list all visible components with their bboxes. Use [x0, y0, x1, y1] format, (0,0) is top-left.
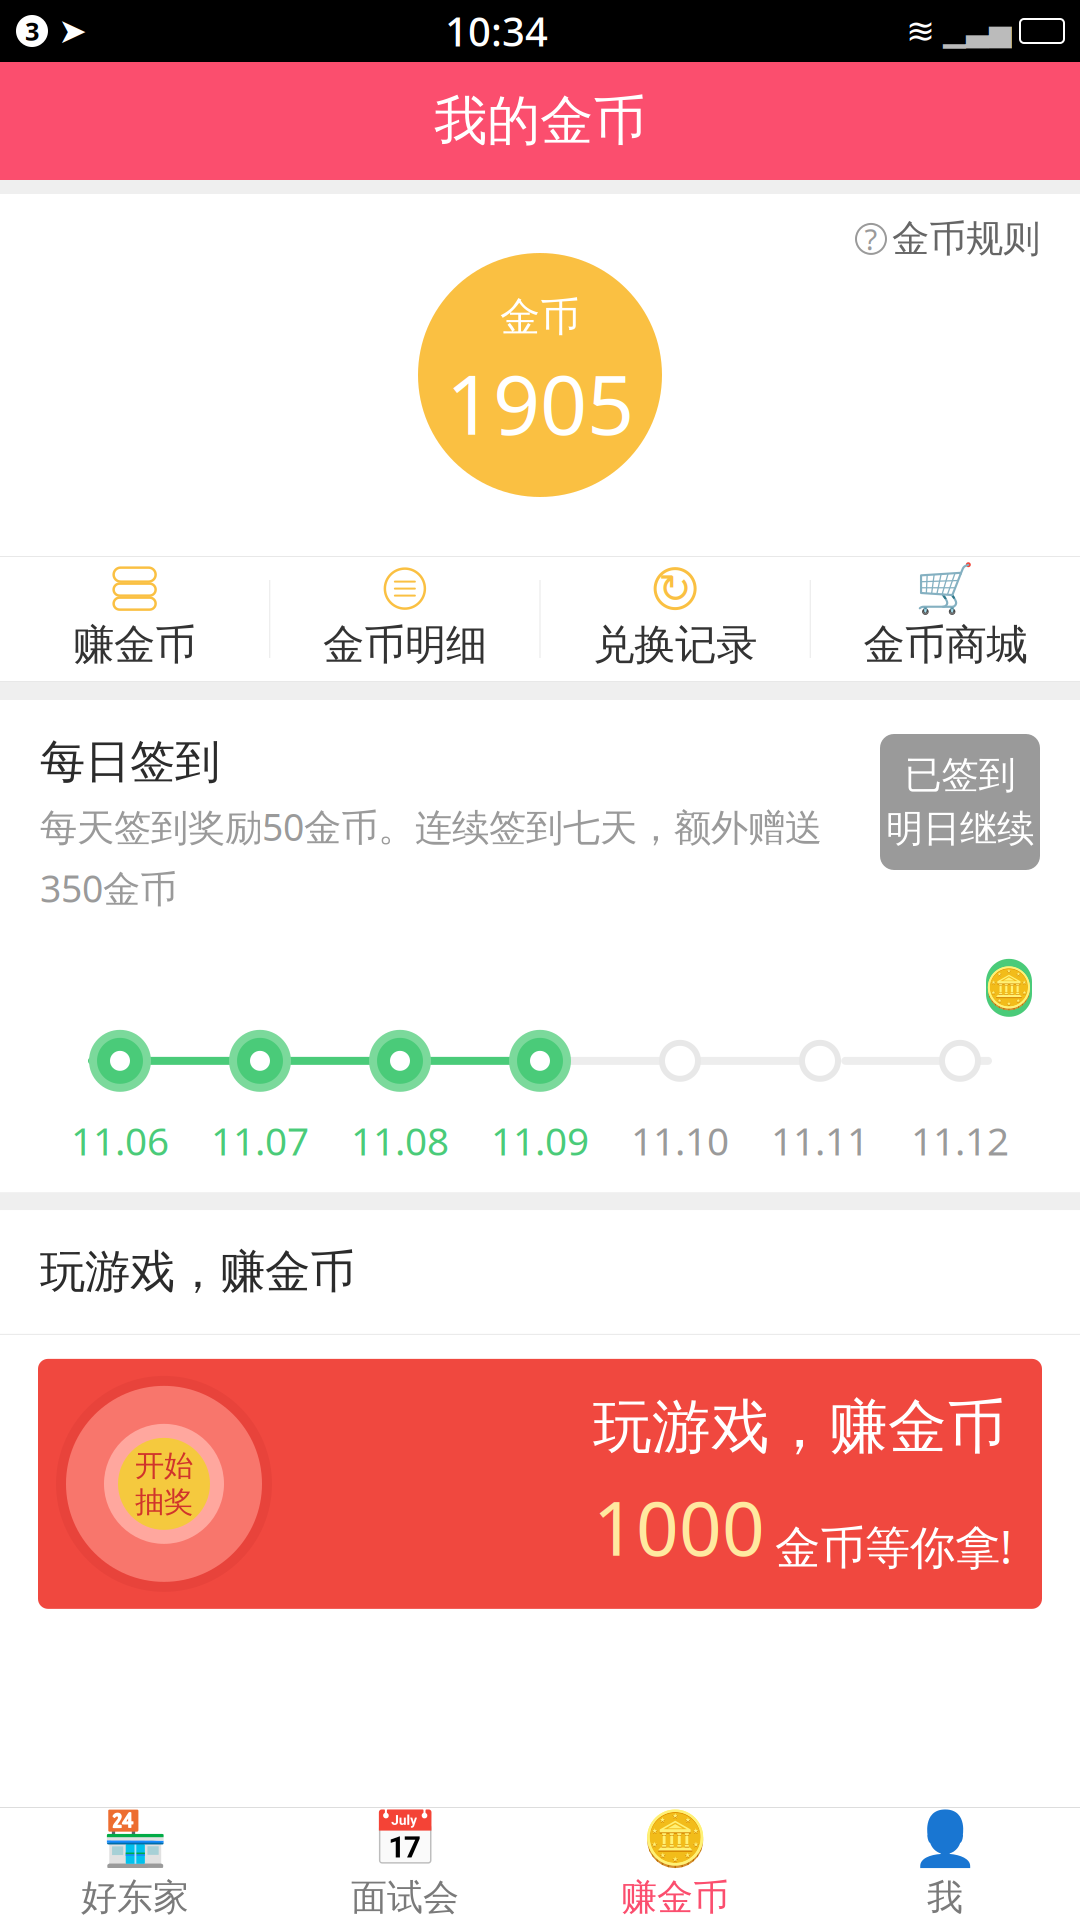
staticText: 金币明细: [323, 620, 487, 670]
staticText: 明日继续: [886, 806, 1034, 852]
button[interactable]: 赚金币: [0, 557, 269, 681]
staticText: 👤: [912, 1808, 978, 1869]
staticText: 我的金币: [434, 88, 646, 154]
staticText: 每日签到: [40, 734, 220, 790]
staticText: 📅: [372, 1808, 438, 1869]
staticText: 1905: [446, 348, 634, 457]
staticText: ≋: [906, 11, 935, 51]
staticText: 350金币: [40, 863, 177, 913]
button[interactable]: 📅: [270, 1808, 540, 1920]
staticText: 每天签到奖励50金币。连续签到七天，额外赠送: [40, 802, 822, 851]
staticText: 金币规则: [892, 216, 1040, 262]
staticText: 🛒: [915, 561, 975, 616]
staticText: 金币等你拿!: [775, 1516, 1012, 1576]
staticText: 11.06: [71, 1115, 169, 1166]
staticText: 10:34: [445, 4, 548, 57]
staticText: ➤: [58, 11, 87, 51]
staticText: 赚金币: [621, 1875, 729, 1920]
staticText: 面试会: [351, 1875, 459, 1920]
staticText: ↻: [658, 566, 692, 611]
staticText: 开始: [135, 1448, 193, 1484]
staticText: 玩游戏，赚金币: [40, 1244, 355, 1300]
button[interactable]: ?: [856, 194, 1080, 262]
staticText: 🏪: [102, 1808, 168, 1869]
staticText: 我: [927, 1875, 963, 1920]
staticText: 🪙: [642, 1808, 708, 1869]
button[interactable]: 👤: [810, 1808, 1080, 1920]
button[interactable]: ↻: [540, 557, 810, 681]
staticText: 11.08: [351, 1115, 449, 1166]
staticText: 11.10: [631, 1115, 729, 1166]
staticText: ▁▃▅: [943, 14, 1012, 48]
staticText: 金币: [500, 292, 580, 342]
staticText: 已签到: [904, 752, 1015, 798]
button[interactable]: 🛒: [811, 557, 1080, 681]
staticText: 🪙: [984, 965, 1034, 1011]
staticText: 赚金币: [73, 620, 196, 670]
staticText: 11.07: [211, 1115, 309, 1166]
staticText: 3: [25, 14, 39, 48]
button[interactable]: 已签到: [880, 734, 1040, 870]
staticText: 玩游戏，赚金币: [593, 1391, 1006, 1463]
staticText: ?: [864, 219, 877, 258]
button[interactable]: 金币明细: [270, 557, 539, 681]
staticText: 兑换记录: [593, 620, 757, 670]
staticText: 好东家: [81, 1875, 189, 1920]
button[interactable]: 🪙: [540, 1808, 810, 1920]
button[interactable]: 开始: [0, 1335, 1080, 1609]
staticText: 11.11: [771, 1115, 869, 1166]
staticText: 抽奖: [135, 1484, 193, 1520]
staticText: 11.12: [911, 1115, 1009, 1166]
button[interactable]: 🏪: [0, 1808, 270, 1920]
staticText: 1000: [593, 1477, 765, 1576]
staticText: 11.09: [491, 1115, 589, 1166]
staticText: 金币商城: [863, 620, 1027, 670]
